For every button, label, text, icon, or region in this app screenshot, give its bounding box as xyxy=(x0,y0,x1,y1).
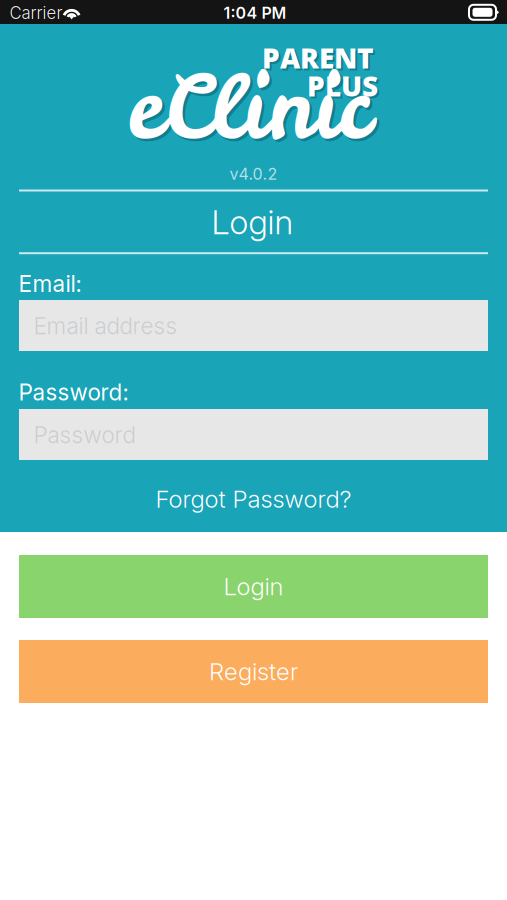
staticText: Email address xyxy=(33,312,177,340)
staticText: Login xyxy=(211,202,293,242)
staticText: PLUS xyxy=(309,69,380,107)
staticText: v4.0.2 xyxy=(229,164,277,184)
staticText: eClinic xyxy=(130,52,372,167)
staticText: eClinic xyxy=(128,50,370,164)
button[interactable]: Forgot Password? xyxy=(19,481,488,517)
staticText: Email: xyxy=(19,270,82,297)
button[interactable]: Register xyxy=(19,640,488,703)
button[interactable]: Login xyxy=(19,555,488,618)
staticText: Forgot Password? xyxy=(155,484,351,513)
staticText: Carrier xyxy=(10,3,63,23)
staticText: PARENT xyxy=(262,39,374,77)
staticText: Login xyxy=(223,572,283,601)
staticText: PARENT xyxy=(264,41,376,79)
staticText: PLUS xyxy=(307,67,378,105)
staticText: Password: xyxy=(19,378,129,406)
staticText: Register xyxy=(209,657,298,686)
staticText: Password xyxy=(33,421,135,449)
staticText: 1:04 PM xyxy=(223,3,286,23)
